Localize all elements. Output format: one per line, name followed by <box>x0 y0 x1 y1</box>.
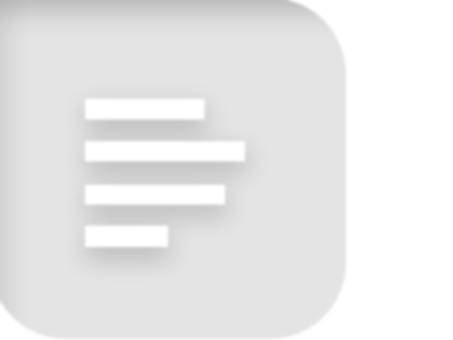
button[interactable]: Note card <box>0 0 453 340</box>
